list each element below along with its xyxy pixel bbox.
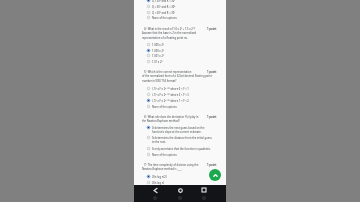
staticText: to the root.	[152, 140, 166, 144]
staticText: the Newton-Raphson method?	[142, 119, 180, 123]
button[interactable]: (-1)ˢ x F x 2ᴱ⁻¹²⁷ where 0 < F < 1	[134, 86, 226, 91]
button[interactable]: Q = 30¹ and R = 30⁰	[134, 4, 226, 9]
staticText: 1 point	[207, 70, 217, 74]
staticText: Assume that the base is 2 in the normali…	[142, 31, 197, 35]
button[interactable]: O(n log n/2)	[134, 174, 226, 179]
staticText: 7) The time complexity of division using…	[144, 163, 199, 167]
staticText: Q = 30¹ and R = 30⁰	[152, 5, 176, 9]
button[interactable]: Recent apps	[198, 184, 210, 196]
staticText: (-1)ˢ x F x 2ᴱ⁻¹²⁷ where 0 < F < 1	[152, 87, 189, 91]
staticText: 5) Which is the correct representation	[144, 70, 192, 74]
staticText: (-1)ˢ x F x 2ᴱ⁻¹²⁷ where 2 < F < 3	[152, 93, 189, 97]
button[interactable]: O(n log n)	[134, 180, 226, 185]
staticText: It determines the next guess based on th…	[152, 126, 205, 130]
staticText: 1 point	[207, 115, 217, 119]
button[interactable]: 1.000 x 2³	[134, 48, 226, 53]
button[interactable]: None of the options	[134, 152, 226, 157]
staticText: (-1)ˢ x F x 2ᴱ⁻¹²⁷ where 1 < F < 2	[152, 99, 189, 103]
staticText: None of the options	[152, 153, 177, 157]
staticText: O(n log n)	[152, 181, 165, 185]
staticText: 1 point	[207, 27, 217, 31]
staticText: 4) What is the result of 1.0 x 2³ + 1.5 …	[144, 27, 195, 31]
button[interactable]: 1.01 x 2³	[134, 59, 226, 64]
staticText: It determines the distance from the init…	[152, 136, 212, 140]
button[interactable]: Scroll to top	[209, 169, 221, 181]
button[interactable]: Q = 30⁰ and R = 30¹	[134, 10, 226, 15]
button[interactable]: (-1)ˢ x F x 2ᴱ⁻¹²⁷ where 2 < F < 3	[134, 92, 226, 97]
staticText: 1 point	[207, 163, 217, 167]
staticText: Q = 30⁰ and R = 30¹	[152, 0, 176, 3]
staticText: None of the options	[152, 16, 177, 20]
staticText: number in IEEE 754 format?	[142, 79, 177, 83]
button[interactable]: Q = 30⁰ and R = 30¹	[134, 0, 226, 3]
staticText: None of the options	[152, 105, 177, 109]
button[interactable]: 1.001 x 2³	[134, 53, 226, 58]
staticText: 1.01 x 2³	[152, 60, 163, 64]
button[interactable]: None of the options	[134, 104, 226, 109]
staticText: 1.000 x 2³	[152, 43, 164, 47]
button[interactable]: It only ascertains that the function is …	[134, 146, 226, 151]
staticText: Q = 30⁰ and R = 30¹	[152, 11, 176, 15]
button[interactable]: Back	[149, 184, 161, 196]
button[interactable]: Home	[174, 184, 186, 196]
button[interactable]: It determines the distance from the init…	[134, 135, 226, 144]
staticText: of the normalized form of a 32-bit decim…	[142, 74, 212, 78]
staticText: representation of a floating point no.	[142, 36, 188, 40]
button[interactable]: 1.000 x 2³	[134, 42, 226, 47]
button[interactable]: (-1)ˢ x F x 2ᴱ⁻¹²⁷ where 1 < F < 2	[134, 98, 226, 103]
staticText: It only ascertains that the function is …	[152, 147, 211, 151]
staticText: 6) What role does the derivative f'(x) p…	[144, 115, 199, 119]
button[interactable]: None of the options	[134, 15, 226, 20]
staticText: 1.001 x 2³	[152, 54, 164, 58]
staticText: 1.000 x 2³	[152, 49, 164, 53]
button[interactable]: It determines the next guess based on th…	[134, 125, 226, 134]
staticText: function's slope at the current estimate…	[152, 130, 202, 134]
staticText: O(n log n/2)	[152, 175, 167, 179]
staticText: Newton-Raphson method is ____.	[142, 167, 183, 171]
